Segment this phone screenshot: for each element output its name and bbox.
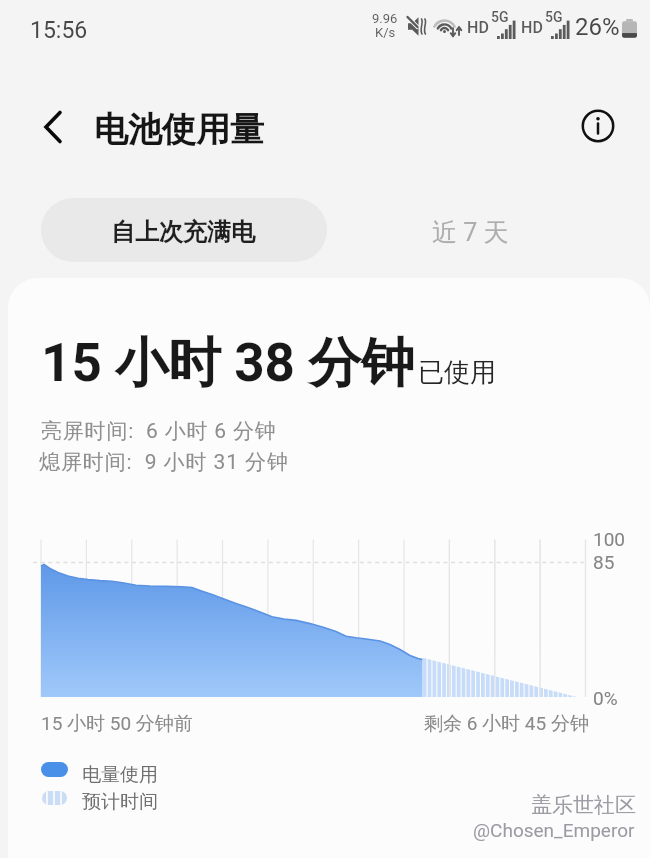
staticText: 电量使用 — [82, 763, 158, 787]
staticText: 15 小时 38 分钟 — [41, 330, 415, 397]
staticText: 熄屏时间: 9 小时 31 分钟 — [39, 449, 289, 475]
staticText: 盖乐世社区 — [531, 792, 636, 818]
staticText: 9.96 — [372, 11, 398, 26]
staticText: 电池使用量 — [94, 108, 264, 151]
staticText: @Chosen_Emperor — [473, 819, 635, 841]
button[interactable]: Back — [20, 97, 80, 157]
staticText: 已使用 — [418, 356, 496, 389]
staticText: 100 — [593, 528, 626, 550]
staticText: 剩余 6 小时 45 分钟 — [424, 712, 589, 736]
staticText: 5G — [545, 9, 563, 25]
button[interactable]: Information — [570, 98, 626, 154]
staticText: HD — [521, 18, 543, 37]
staticText: 自上次充满电 — [111, 217, 255, 247]
button[interactable]: 自上次充满电 — [41, 198, 327, 262]
staticText: 15:56 — [30, 17, 88, 44]
staticText: 26% — [575, 13, 620, 41]
staticText: 15 小时 50 分钟前 — [41, 712, 193, 736]
button[interactable]: 近 7 天 — [350, 198, 590, 262]
staticText: HD — [467, 18, 489, 37]
staticText: 预计时间 — [82, 790, 158, 814]
staticText: K/s — [375, 25, 396, 40]
staticText: 亮屏时间: 6 小时 6 分钟 — [41, 418, 277, 444]
staticText: 近 7 天 — [432, 217, 509, 248]
staticText: 85 — [593, 551, 615, 573]
staticText: 0% — [593, 687, 618, 709]
staticText: 5G — [491, 9, 509, 25]
